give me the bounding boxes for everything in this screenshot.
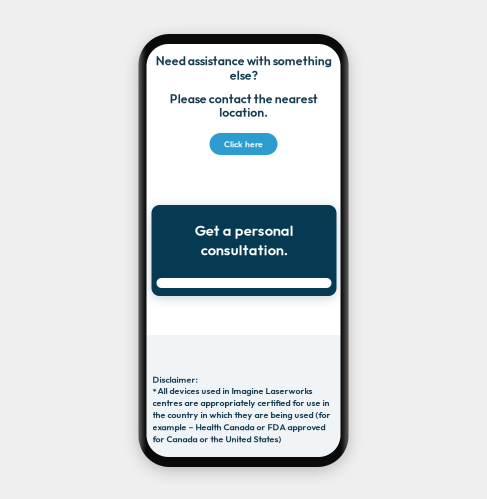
staticText: Click here — [224, 138, 263, 149]
staticText: Get a personal consultation. — [194, 221, 293, 259]
staticText: * All devices used in Imagine Laserworks… — [152, 385, 330, 444]
staticText: Need assistance with something else? — [155, 53, 331, 83]
button[interactable]: Click here — [209, 133, 277, 155]
button[interactable]: Get a personal consultation. — [151, 205, 336, 296]
staticText: Disclaimer: — [152, 374, 197, 385]
staticText: Please contact the nearest location. — [169, 91, 317, 120]
